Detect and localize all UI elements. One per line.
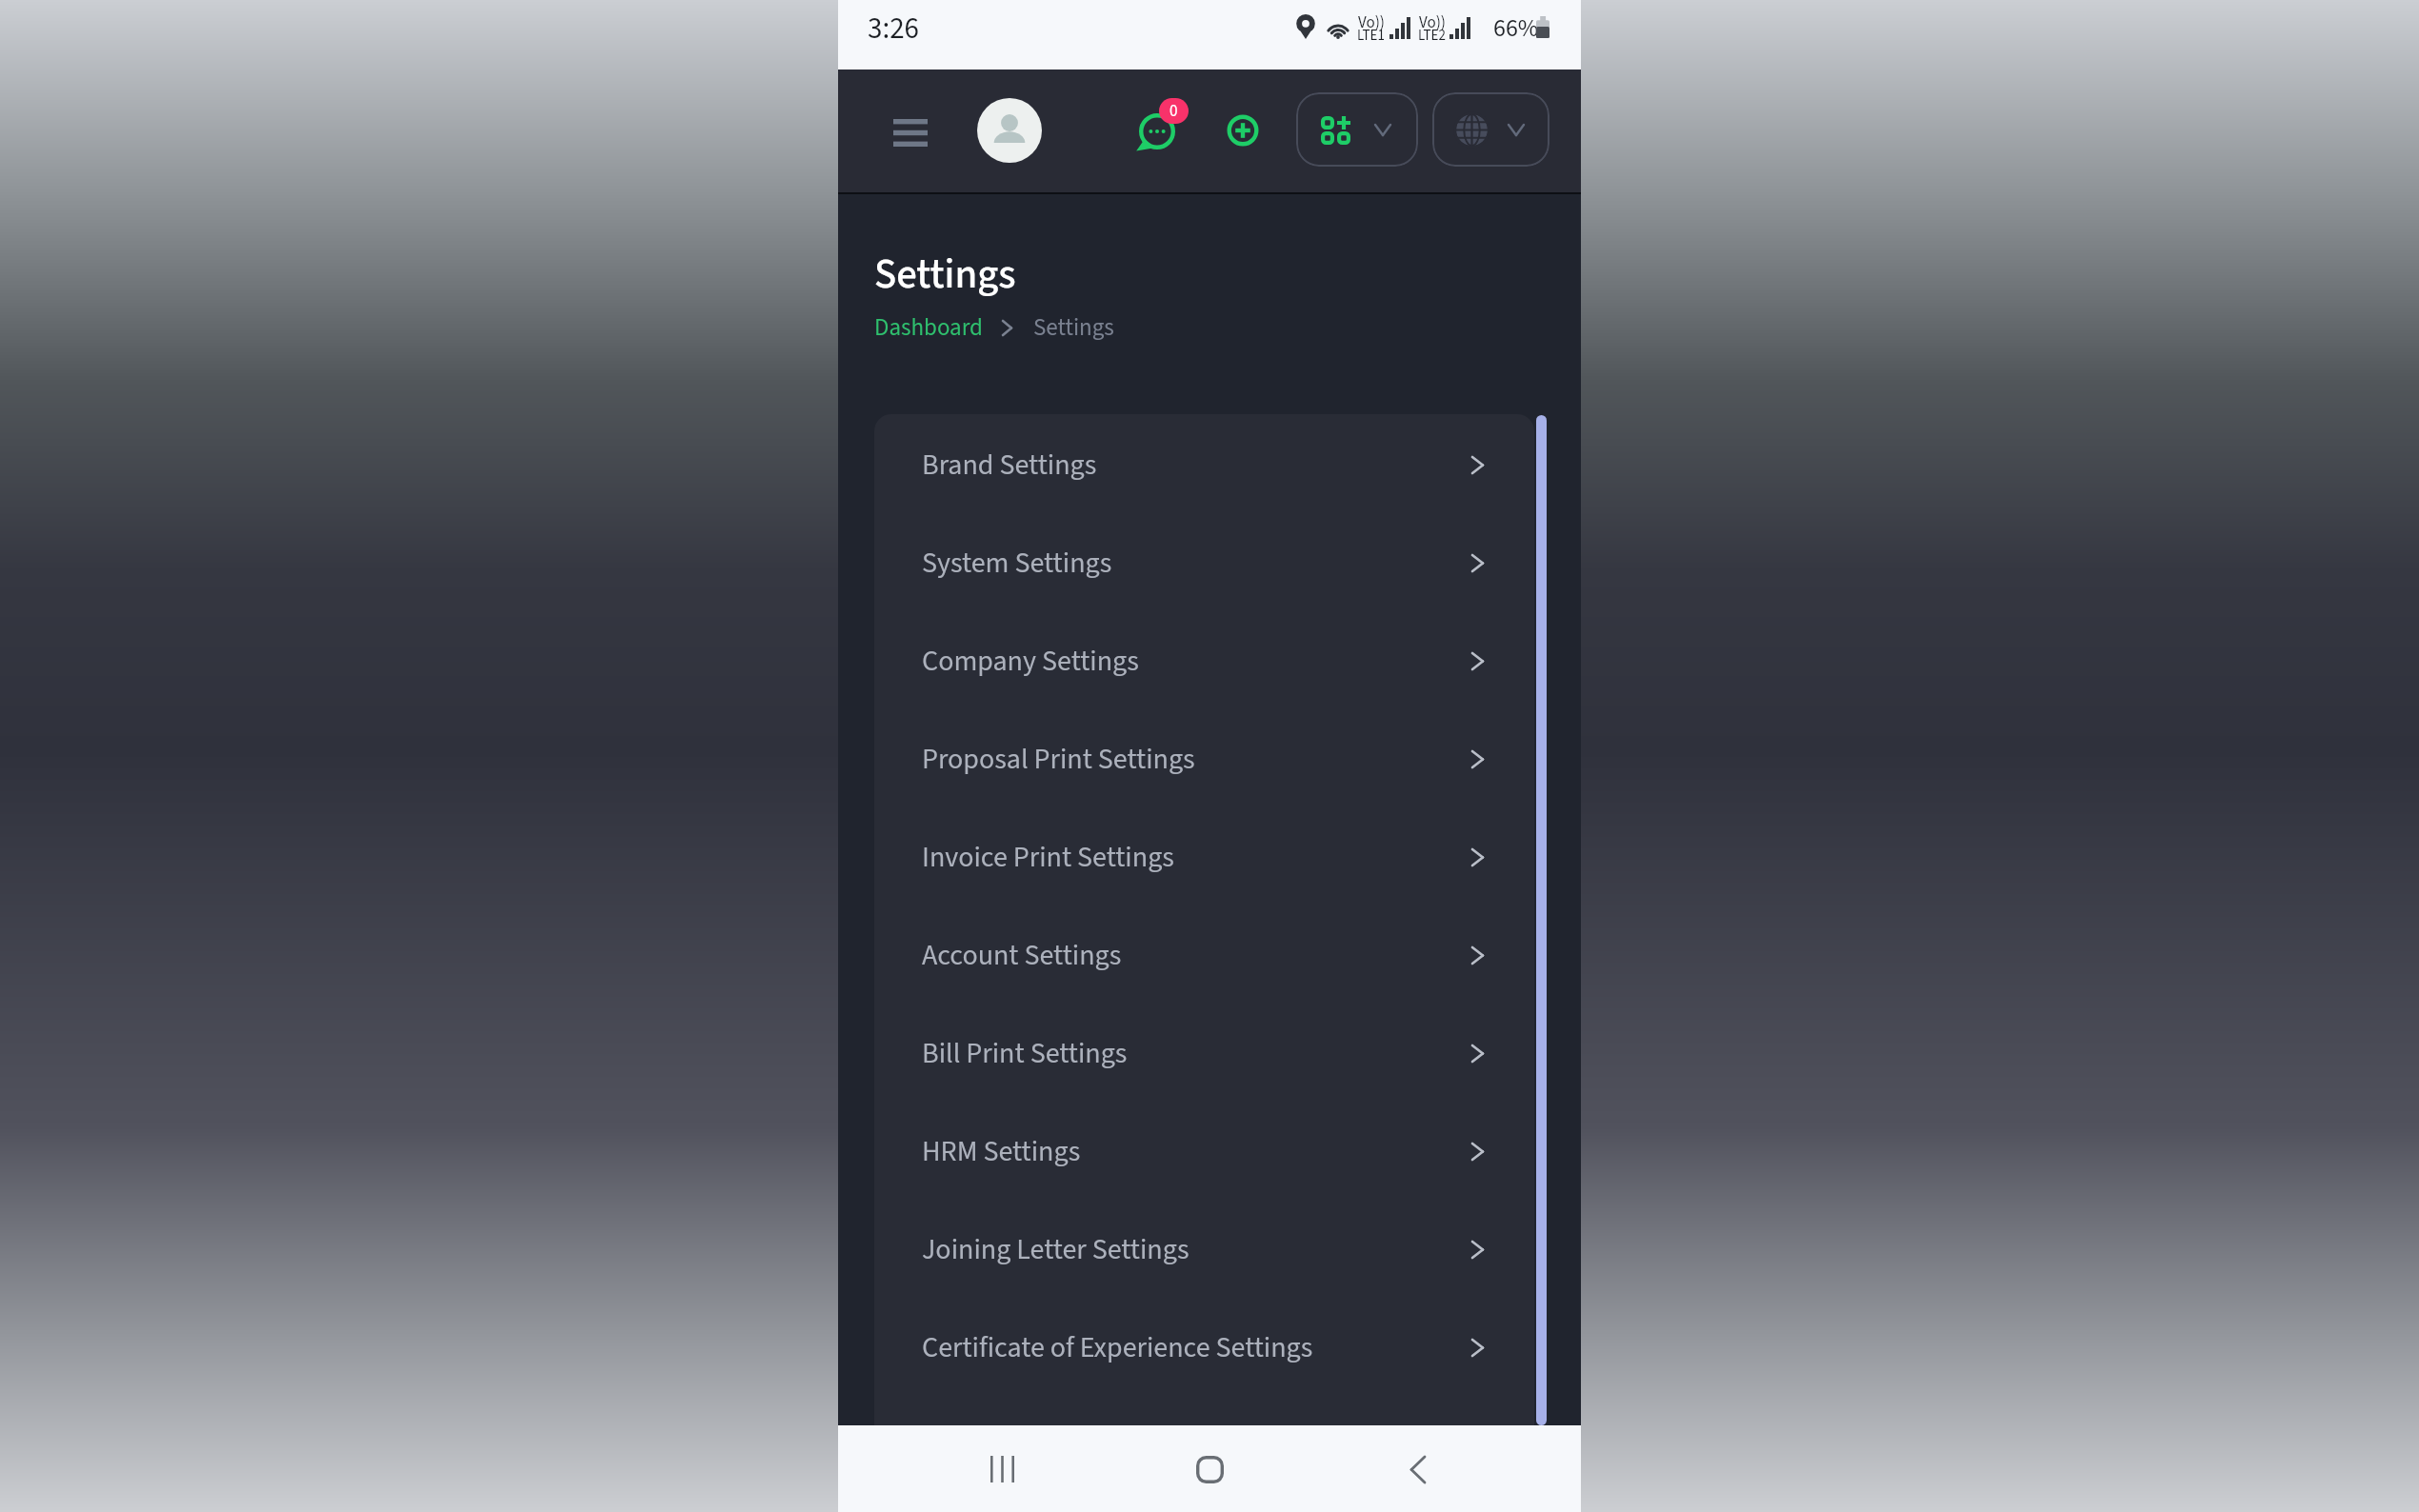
staticText: Invoice Print Settings	[922, 837, 1174, 878]
staticText: Settings	[1033, 310, 1114, 345]
staticText: Proposal Print Settings	[922, 739, 1195, 780]
button[interactable]: Back	[1380, 1431, 1456, 1507]
button[interactable]: Certificate of Experience Settings	[874, 1299, 1534, 1397]
staticText: System Settings	[922, 543, 1112, 584]
button[interactable]: Account Settings	[874, 906, 1534, 1005]
staticText: Account Settings	[922, 935, 1122, 976]
button[interactable]: Dashboard	[874, 310, 983, 345]
staticText: 0	[1170, 100, 1178, 123]
staticText: Settings	[874, 246, 1016, 304]
staticText: Vo))	[1358, 11, 1386, 34]
staticText: 66%	[1493, 10, 1539, 46]
staticText: LTE2	[1418, 26, 1446, 46]
button[interactable]: Brand Settings	[874, 416, 1534, 514]
button[interactable]: Company Settings	[874, 612, 1534, 710]
button[interactable]: Recent apps	[964, 1431, 1040, 1507]
button[interactable]: Joining Letter Settings	[874, 1201, 1534, 1299]
staticText: Joining Letter Settings	[922, 1229, 1190, 1270]
button[interactable]: Messages	[1135, 94, 1192, 153]
staticText: 3:26	[868, 8, 919, 50]
button[interactable]: Bill Print Settings	[874, 1005, 1534, 1103]
button[interactable]: System Settings	[874, 514, 1534, 612]
staticText: Company Settings	[922, 641, 1139, 682]
button[interactable]: Apps	[1296, 92, 1418, 167]
staticText: Vo))	[1419, 11, 1447, 34]
button[interactable]: Language	[1432, 92, 1549, 167]
button[interactable]: Proposal Print Settings	[874, 710, 1534, 808]
button[interactable]: Menu	[882, 104, 939, 161]
staticText: HRM Settings	[922, 1131, 1081, 1172]
button[interactable]: Add	[1222, 109, 1264, 151]
button[interactable]: Home	[1171, 1431, 1248, 1507]
staticText: LTE1	[1357, 26, 1385, 46]
staticText: Brand Settings	[922, 445, 1097, 486]
staticText: Bill Print Settings	[922, 1033, 1128, 1074]
button[interactable]: Invoice Print Settings	[874, 808, 1534, 906]
staticText: Certificate of Experience Settings	[922, 1327, 1313, 1368]
button[interactable]: HRM Settings	[874, 1103, 1534, 1201]
button[interactable]: Profile	[977, 98, 1042, 163]
